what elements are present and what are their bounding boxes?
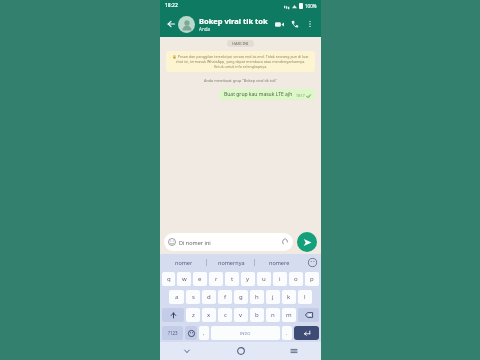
staticText: , bbox=[203, 330, 205, 337]
staticText: l bbox=[304, 293, 306, 301]
staticText: q bbox=[167, 275, 171, 283]
button[interactable]: INDO bbox=[211, 326, 280, 340]
staticText: a bbox=[175, 293, 179, 301]
button[interactable]: nomernya bbox=[207, 254, 255, 270]
button[interactable]: Emoji bbox=[185, 326, 197, 340]
button[interactable]: i bbox=[273, 272, 287, 286]
button[interactable]: y bbox=[241, 272, 255, 286]
staticText: p bbox=[310, 275, 314, 283]
button[interactable]: k bbox=[282, 290, 296, 304]
button[interactable]: w bbox=[177, 272, 191, 286]
button[interactable]: Home bbox=[232, 342, 250, 360]
staticText: k bbox=[287, 293, 291, 301]
staticText: Buat grup kau masuk LTE ajh bbox=[224, 91, 293, 98]
staticText: m bbox=[286, 311, 292, 319]
staticText: INDO bbox=[240, 331, 251, 336]
button[interactable]: Stickers bbox=[303, 254, 321, 270]
staticText: 100% bbox=[305, 3, 317, 9]
staticText: 🔒 Pesan dan panggilan terenkripsi secara… bbox=[172, 54, 309, 69]
button[interactable]: Enter bbox=[294, 326, 319, 340]
staticText: HARI INI bbox=[232, 41, 249, 46]
button[interactable]: More options bbox=[303, 17, 317, 31]
button[interactable]: r bbox=[209, 272, 223, 286]
button[interactable]: Send bbox=[297, 232, 317, 252]
button[interactable]: j bbox=[266, 290, 280, 304]
staticText: u bbox=[262, 275, 266, 283]
staticText: nomernya bbox=[218, 259, 245, 266]
staticText: Anda bbox=[199, 26, 210, 32]
button[interactable]: Voice call bbox=[287, 16, 303, 32]
staticText: w bbox=[182, 275, 187, 283]
button[interactable]: Video call bbox=[271, 16, 287, 32]
staticText: 18:22 bbox=[165, 2, 178, 9]
staticText: j bbox=[272, 293, 274, 301]
staticText: o bbox=[294, 275, 298, 283]
button[interactable]: p bbox=[305, 272, 319, 286]
button[interactable]: u bbox=[257, 272, 271, 286]
staticText: s bbox=[192, 293, 195, 301]
button[interactable]: t bbox=[225, 272, 239, 286]
button[interactable]: c bbox=[218, 308, 232, 322]
staticText: Bokep viral tik tok bbox=[199, 16, 268, 26]
staticText: c bbox=[224, 311, 227, 319]
button[interactable]: x bbox=[202, 308, 216, 322]
button[interactable]: l bbox=[298, 290, 312, 304]
button[interactable]: g bbox=[234, 290, 248, 304]
staticText: h bbox=[255, 293, 259, 301]
staticText: x bbox=[207, 311, 211, 319]
button[interactable]: o bbox=[289, 272, 303, 286]
staticText: Di nomer ini bbox=[179, 239, 281, 246]
staticText: ?123 bbox=[168, 330, 178, 336]
button[interactable]: . bbox=[282, 326, 292, 340]
staticText: b bbox=[255, 311, 259, 319]
button[interactable]: m bbox=[282, 308, 296, 322]
staticText: 18:17 bbox=[296, 93, 305, 98]
staticText: f bbox=[224, 293, 227, 301]
button[interactable]: v bbox=[234, 308, 248, 322]
button[interactable]: Profile photo bbox=[178, 16, 195, 33]
button[interactable]: q bbox=[162, 272, 175, 286]
button[interactable]: Shift bbox=[162, 308, 184, 322]
button[interactable]: h bbox=[250, 290, 264, 304]
button[interactable]: Backspace bbox=[298, 308, 319, 322]
staticText: y bbox=[246, 275, 250, 283]
staticText: n bbox=[271, 311, 275, 319]
staticText: d bbox=[207, 293, 211, 301]
button[interactable]: d bbox=[202, 290, 216, 304]
button[interactable]: Back bbox=[178, 342, 196, 360]
button[interactable]: ?123 bbox=[162, 326, 183, 340]
button[interactable]: Bokep viral tik tok bbox=[199, 16, 271, 32]
button[interactable]: , bbox=[199, 326, 209, 340]
staticText: z bbox=[192, 311, 195, 319]
button[interactable]: nomere bbox=[255, 254, 303, 270]
staticText: g bbox=[239, 293, 243, 301]
button[interactable]: e bbox=[193, 272, 207, 286]
staticText: nomere bbox=[269, 259, 290, 266]
staticText: Anda membuat grup "Bokep viral tik tok" bbox=[204, 78, 278, 83]
button[interactable]: b bbox=[250, 308, 264, 322]
button[interactable]: n bbox=[266, 308, 280, 322]
staticText: t bbox=[231, 275, 234, 283]
staticText: r bbox=[215, 275, 218, 283]
button[interactable]: Back bbox=[164, 17, 178, 31]
staticText: . bbox=[286, 330, 288, 337]
staticText: e bbox=[198, 275, 202, 283]
button[interactable]: Recent apps bbox=[285, 342, 303, 360]
button[interactable]: s bbox=[186, 290, 200, 304]
button[interactable]: z bbox=[186, 308, 200, 322]
staticText: nomer bbox=[175, 259, 193, 266]
button[interactable]: Buat grup kau masuk LTE ajh bbox=[220, 89, 315, 100]
button[interactable]: Di nomer ini bbox=[164, 233, 293, 251]
staticText: v bbox=[239, 311, 243, 319]
button[interactable]: a bbox=[169, 290, 184, 304]
button[interactable]: nomer bbox=[160, 254, 207, 270]
button[interactable]: f bbox=[218, 290, 232, 304]
staticText: i bbox=[279, 275, 281, 283]
